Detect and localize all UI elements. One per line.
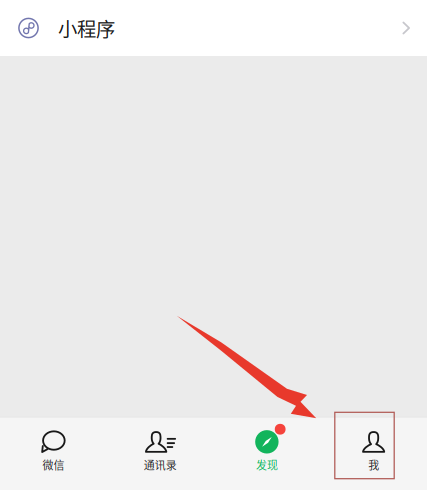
button[interactable]: 发现 bbox=[213, 422, 320, 486]
staticText: 我 bbox=[368, 457, 379, 473]
button[interactable]: 通讯录 bbox=[107, 422, 214, 486]
staticText: 发现 bbox=[256, 457, 278, 473]
staticText: 通讯录 bbox=[144, 457, 177, 473]
button[interactable]: 我 bbox=[320, 422, 427, 486]
staticText: 微信 bbox=[42, 457, 64, 473]
button[interactable]: 微信 bbox=[0, 422, 107, 486]
staticText: 小程序 bbox=[58, 14, 115, 42]
button[interactable]: 小程序 bbox=[0, 0, 427, 56]
